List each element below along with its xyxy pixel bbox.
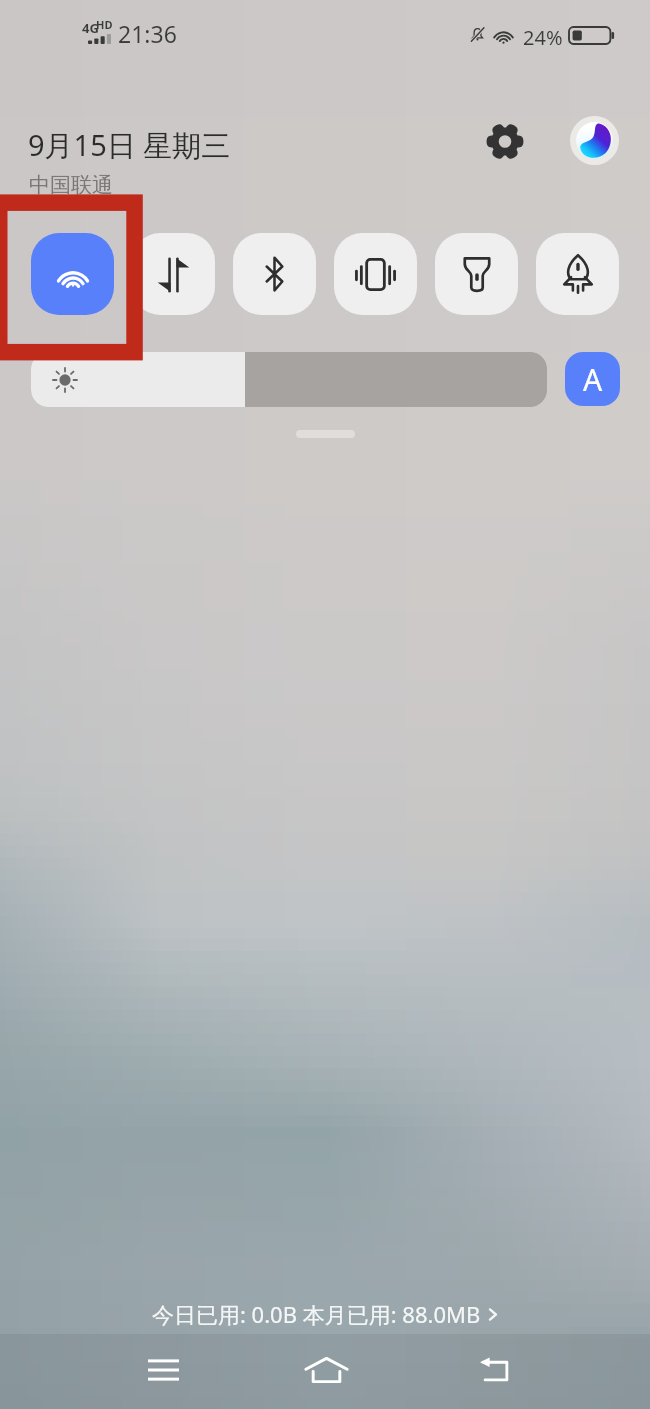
button[interactable]: Auto brightness — [565, 352, 620, 406]
button[interactable]: Assistant — [570, 116, 619, 165]
staticText: 21:36 — [118, 18, 177, 49]
staticText: 24% — [523, 24, 563, 51]
staticText: 今日已用: 0.0B 本月已用: 88.0MB — [152, 1299, 481, 1329]
button[interactable]: Recents — [118, 1334, 208, 1409]
button[interactable]: Home — [281, 1334, 371, 1409]
button[interactable]: Back — [450, 1334, 540, 1409]
button[interactable]: Bluetooth — [233, 233, 316, 315]
button[interactable]: Vibrate — [334, 233, 417, 315]
staticText: 中国联通 — [29, 172, 113, 198]
button[interactable]: 今日已用: 0.0B 本月已用: 88.0MB — [0, 1275, 650, 1334]
button[interactable]: Mobile data — [132, 233, 215, 315]
staticText: HD — [96, 17, 113, 32]
button[interactable]: Settings — [478, 114, 532, 168]
staticText: A — [583, 359, 603, 400]
button[interactable]: Brightness — [31, 352, 547, 407]
staticText: 9月15日 星期三 — [28, 125, 231, 165]
button[interactable]: WiFi — [31, 233, 114, 315]
staticText: 4G — [82, 19, 99, 37]
button[interactable]: Accelerate — [536, 233, 619, 315]
button[interactable]: Flashlight — [435, 233, 518, 315]
